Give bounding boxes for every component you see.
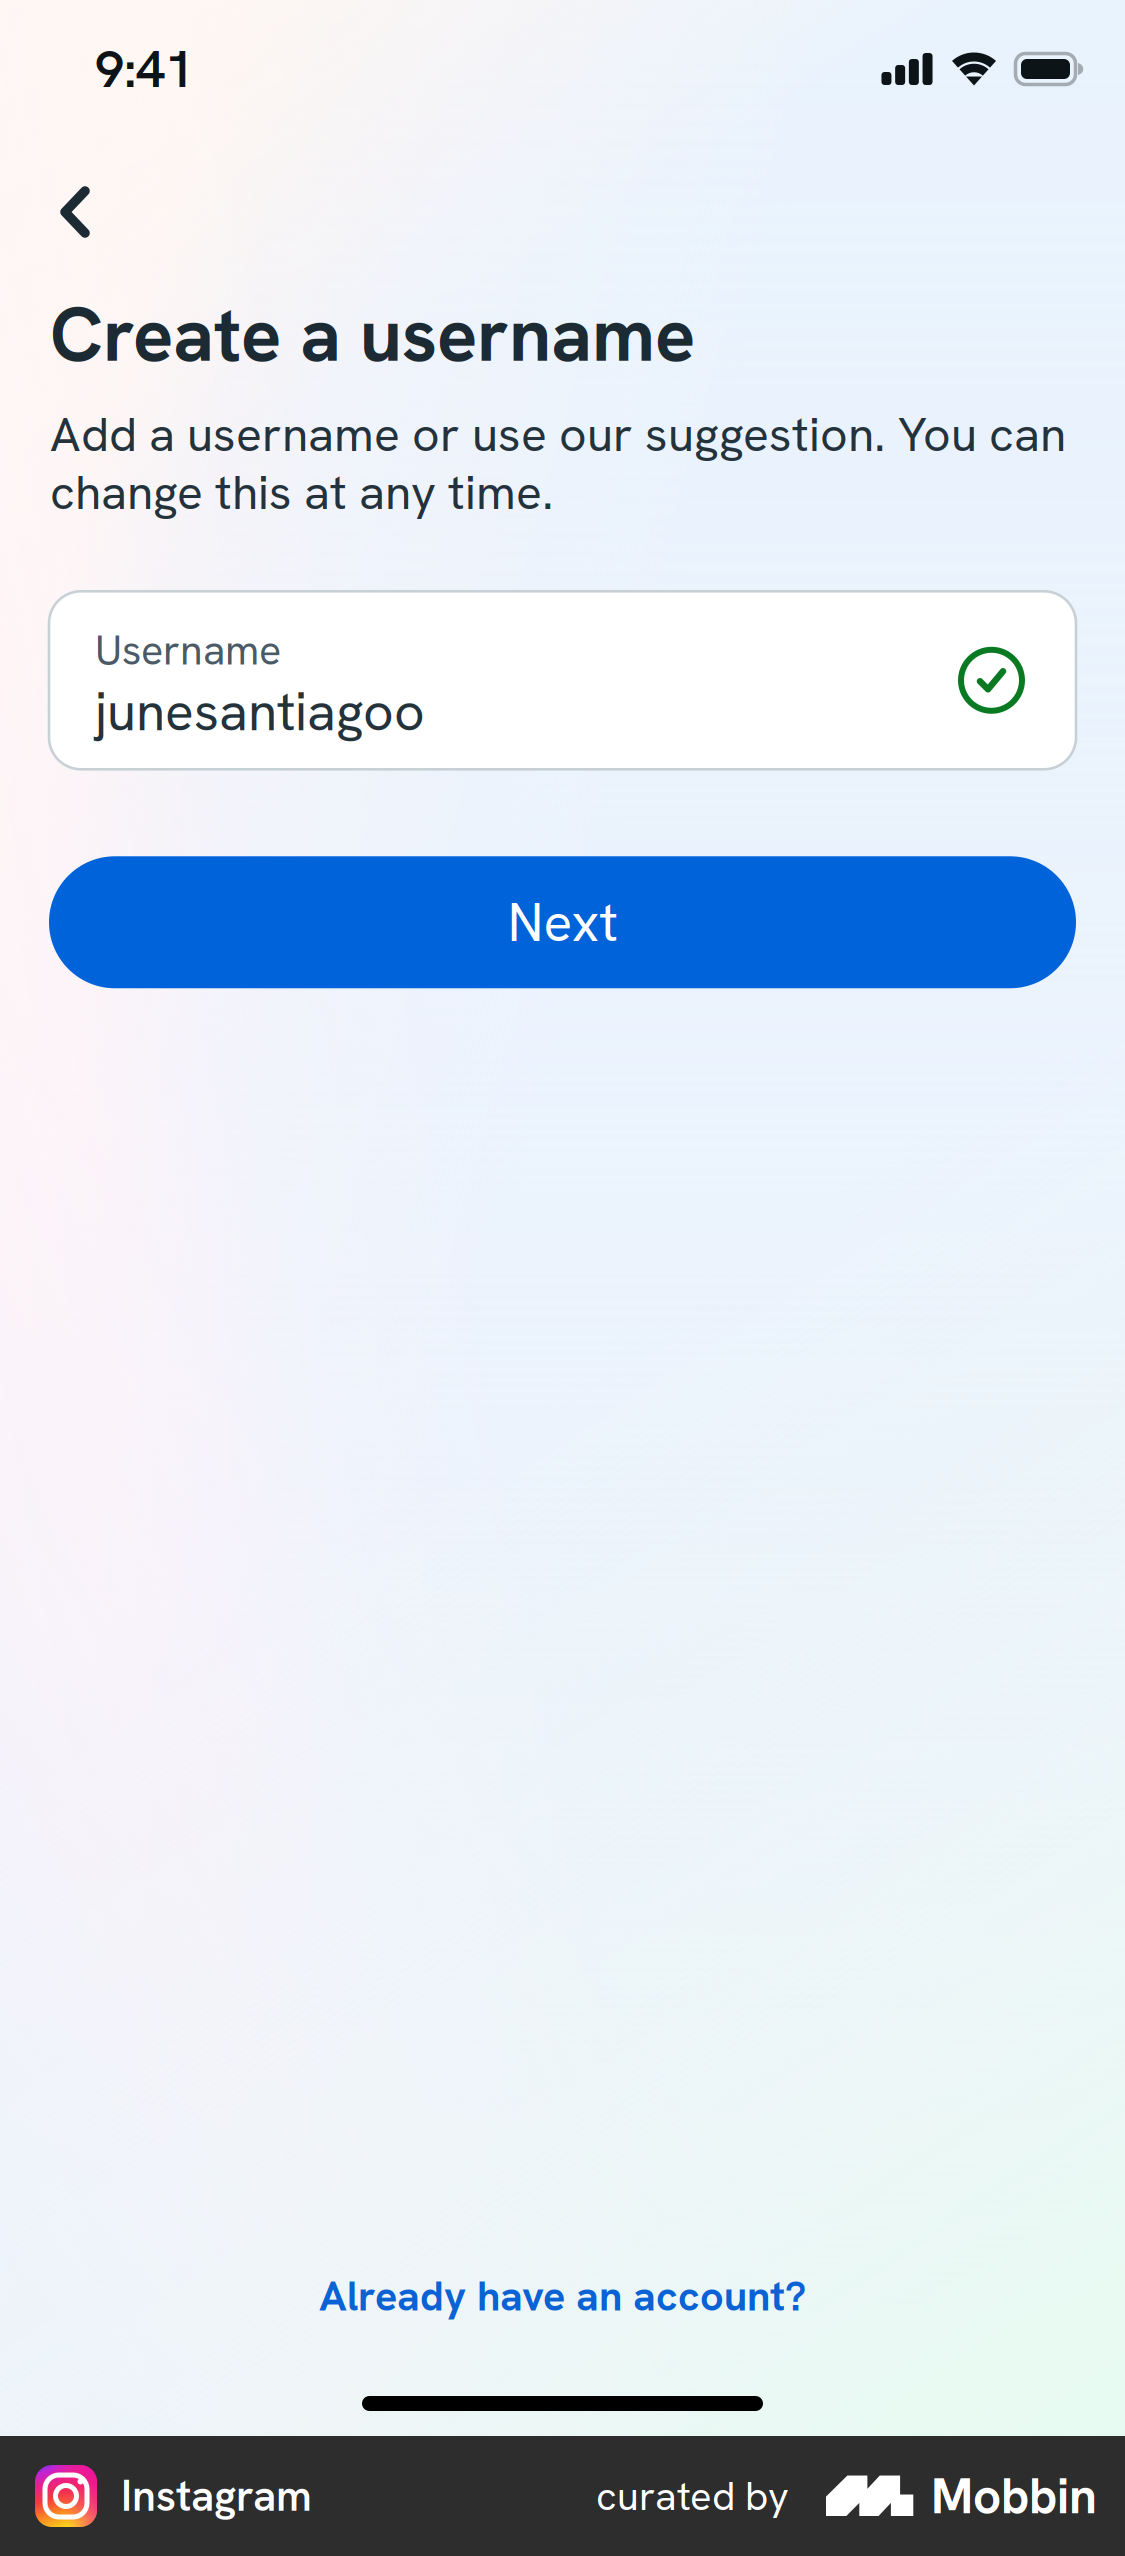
- staticText: change this at any time.: [50, 461, 554, 523]
- staticText: Username: [95, 623, 281, 677]
- staticText: Already have an account?: [319, 2269, 806, 2323]
- staticText: Add a username or use our suggestion. Yo…: [50, 403, 1066, 465]
- staticText: Instagram: [121, 2468, 312, 2524]
- button[interactable]: Already have an account?: [275, 2247, 850, 2345]
- staticText: Mobbin: [931, 2464, 1097, 2528]
- button[interactable]: Next: [49, 856, 1076, 988]
- staticText: curated by: [596, 2470, 789, 2522]
- staticText: 9:41: [95, 35, 194, 103]
- staticText: Next: [507, 887, 617, 957]
- staticText: Create a username: [50, 286, 695, 383]
- button[interactable]: Username: [49, 591, 1076, 769]
- staticText: junesantiagoo: [95, 677, 425, 746]
- button[interactable]: Back: [0, 138, 132, 262]
